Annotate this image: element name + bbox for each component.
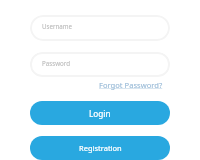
staticText: Registration	[79, 143, 122, 153]
button[interactable]: Registration	[30, 136, 170, 160]
button[interactable]: Username	[30, 15, 170, 41]
button[interactable]: Password	[30, 52, 170, 77]
staticText: Password	[42, 59, 70, 67]
button[interactable]: Forgot Password?	[99, 80, 163, 90]
staticText: Login	[89, 108, 111, 119]
staticText: Forgot Password?	[99, 80, 163, 90]
staticText: Username	[42, 22, 73, 30]
button[interactable]: Login	[30, 101, 170, 125]
